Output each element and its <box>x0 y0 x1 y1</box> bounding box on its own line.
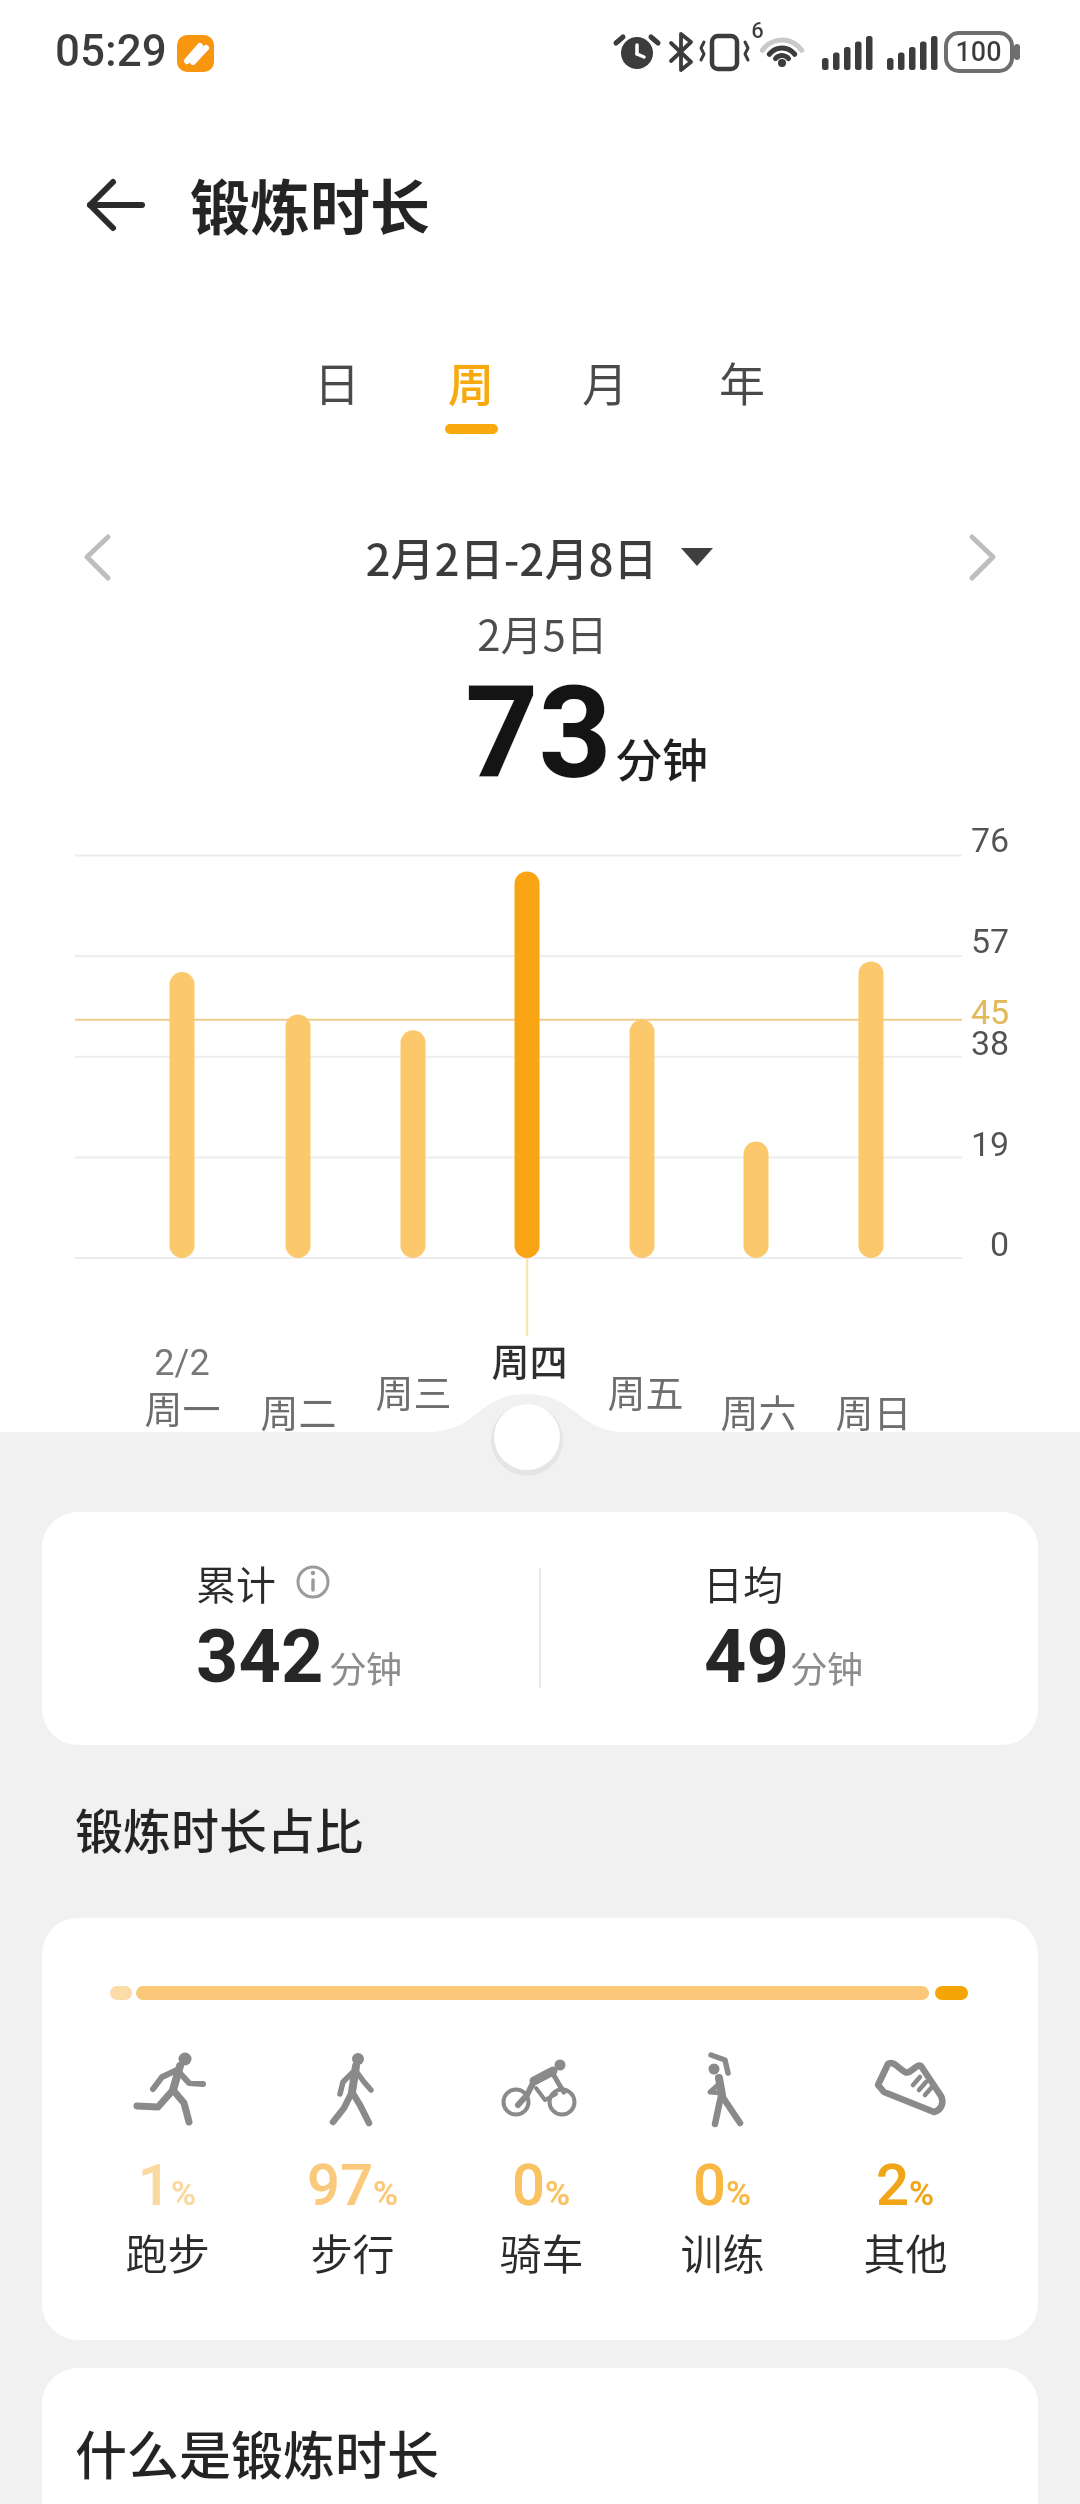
button[interactable] <box>60 525 130 589</box>
staticText: 日均 <box>703 1554 783 1612</box>
staticText: 342 <box>196 1613 324 1700</box>
staticText: 1% <box>138 2151 196 2219</box>
staticText: 0% <box>693 2151 751 2219</box>
staticText: 锻炼时长占比 <box>75 1793 364 1863</box>
staticText: 19 <box>971 1124 1010 1164</box>
button[interactable] <box>950 525 1020 589</box>
staticText: 2/2 <box>154 1342 210 1384</box>
staticText: 分钟 <box>616 724 708 791</box>
button[interactable] <box>494 1404 560 1470</box>
staticText: 周三 <box>375 1363 452 1418</box>
staticText: 周二 <box>260 1383 337 1438</box>
staticText: 什么是锻炼时长 <box>75 2415 440 2490</box>
staticText: 38 <box>971 1023 1010 1063</box>
staticText: 月 <box>582 348 628 415</box>
button[interactable] <box>42 1512 1038 1745</box>
staticText: 周日 <box>835 1383 912 1438</box>
staticText: 97% <box>307 2151 398 2219</box>
staticText: 周六 <box>720 1383 797 1438</box>
staticText: 日 <box>314 348 360 415</box>
button[interactable] <box>426 338 516 424</box>
staticText: 周 <box>448 348 494 415</box>
staticText: 步行 <box>310 2221 395 2282</box>
staticText: 训练 <box>680 2221 765 2282</box>
staticText: 跑步 <box>125 2221 210 2282</box>
staticText: 2% <box>876 2151 934 2219</box>
staticText: 其他 <box>863 2221 948 2282</box>
staticText: 锻炼时长 <box>190 160 430 247</box>
staticText: 57 <box>971 921 1010 961</box>
staticText: 6 <box>751 18 764 44</box>
staticText: 0% <box>512 2151 570 2219</box>
staticText: 周四 <box>491 1332 568 1387</box>
staticText: 05:29 <box>55 25 167 77</box>
button[interactable] <box>70 170 160 240</box>
staticText: 骑车 <box>499 2221 584 2282</box>
button[interactable] <box>697 338 787 424</box>
staticText: 2月5日 <box>477 602 608 663</box>
staticText: 100 <box>955 36 1002 68</box>
staticText: 45 <box>971 992 1010 1032</box>
staticText: 76 <box>971 820 1010 860</box>
staticText: 0 <box>990 1224 1010 1264</box>
button[interactable] <box>42 1918 1038 2340</box>
staticText: 年 <box>719 348 765 415</box>
staticText: 分钟 <box>791 1641 864 1693</box>
button[interactable] <box>292 338 382 424</box>
button[interactable] <box>355 520 725 594</box>
button[interactable] <box>42 2368 1038 2504</box>
staticText: 分钟 <box>330 1641 403 1693</box>
staticText: 周五 <box>607 1363 684 1418</box>
staticText: 73 <box>465 658 612 808</box>
staticText: 2月2日-2月8日 <box>365 525 658 589</box>
button[interactable] <box>560 338 650 424</box>
staticText: 累计 <box>196 1554 276 1612</box>
staticText: 49 <box>704 1613 789 1700</box>
staticText: 周一 <box>144 1379 221 1434</box>
